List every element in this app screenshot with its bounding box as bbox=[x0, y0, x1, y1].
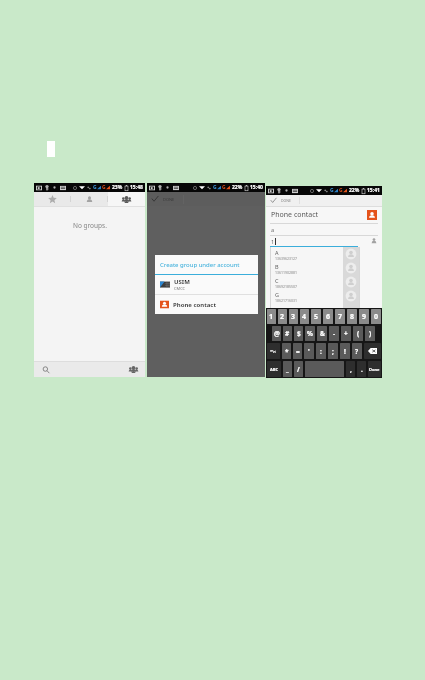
button[interactable]: = bbox=[293, 343, 302, 359]
staticText: 22% bbox=[349, 187, 360, 194]
staticText: = bbox=[296, 347, 300, 356]
staticText: Phone contact bbox=[271, 210, 319, 220]
button[interactable]: B bbox=[271, 261, 343, 275]
button[interactable]: ' bbox=[304, 343, 314, 359]
staticText: 18621716031 bbox=[275, 298, 298, 303]
button[interactable]: * bbox=[282, 343, 291, 359]
staticText: . bbox=[361, 365, 363, 374]
staticText: 15:41 bbox=[367, 187, 380, 194]
staticText: 13639623127 bbox=[275, 256, 298, 261]
button[interactable]: + bbox=[341, 326, 351, 341]
staticText: G bbox=[213, 184, 217, 191]
staticText: # bbox=[285, 329, 290, 338]
button[interactable]: Tab bbox=[71, 192, 108, 206]
button[interactable]: ? bbox=[352, 343, 362, 359]
staticText: 2 bbox=[280, 312, 285, 322]
button[interactable]: Phone contact bbox=[155, 295, 258, 314]
staticText: ABC bbox=[270, 367, 278, 372]
button[interactable]: Add group bbox=[121, 362, 145, 377]
staticText: 13611902881 bbox=[275, 270, 298, 275]
button[interactable]: @ bbox=[272, 326, 281, 341]
button[interactable]: 9 bbox=[359, 309, 369, 324]
staticText: ' bbox=[308, 347, 310, 356]
button[interactable]: ) bbox=[365, 326, 375, 341]
staticText: * bbox=[285, 347, 289, 356]
button[interactable]: G bbox=[271, 289, 343, 303]
staticText: 8 bbox=[350, 312, 355, 322]
button[interactable]: C bbox=[271, 275, 343, 289]
button[interactable]: 2 bbox=[278, 309, 287, 324]
staticText: G bbox=[339, 187, 343, 194]
staticText: 0 bbox=[374, 312, 379, 322]
staticText: : bbox=[320, 347, 322, 356]
staticText: G bbox=[222, 184, 226, 191]
staticText: 3 bbox=[291, 312, 296, 322]
staticText: 1 bbox=[269, 312, 274, 322]
staticText: 15:48 bbox=[130, 184, 143, 191]
staticText: C bbox=[275, 277, 279, 284]
staticText: , bbox=[350, 365, 352, 374]
staticText: No groups. bbox=[73, 221, 107, 230]
staticText: ( bbox=[357, 329, 360, 338]
staticText: DONE bbox=[281, 198, 291, 203]
staticText: _ bbox=[286, 365, 289, 374]
button[interactable]: ( bbox=[353, 326, 363, 341]
button[interactable]: 6 bbox=[323, 309, 333, 324]
staticText: a bbox=[271, 226, 275, 233]
staticText: $ bbox=[297, 329, 301, 338]
button[interactable]: / bbox=[294, 361, 303, 377]
staticText: 6 bbox=[326, 312, 331, 322]
staticText: G bbox=[275, 291, 280, 298]
staticText: & bbox=[320, 329, 325, 338]
button[interactable]: USIM bbox=[155, 275, 258, 294]
staticText: G bbox=[93, 184, 97, 191]
button[interactable]: Account bbox=[367, 210, 377, 220]
button[interactable]: . bbox=[357, 361, 366, 377]
staticText: A bbox=[275, 249, 279, 256]
button[interactable]: A bbox=[271, 247, 343, 261]
staticText: Done bbox=[369, 367, 380, 372]
button[interactable]: % bbox=[305, 326, 315, 341]
staticText: @ bbox=[274, 329, 280, 338]
staticText: G bbox=[102, 184, 106, 191]
button[interactable]: , bbox=[346, 361, 355, 377]
button[interactable]: 5 bbox=[311, 309, 321, 324]
button[interactable]: $ bbox=[294, 326, 303, 341]
button[interactable]: Delete bbox=[364, 343, 381, 359]
button[interactable]: 4 bbox=[300, 309, 309, 324]
button[interactable]: # bbox=[283, 326, 292, 341]
button[interactable]: 8 bbox=[347, 309, 357, 324]
staticText: / bbox=[297, 365, 300, 374]
staticText: Phone contact bbox=[173, 301, 217, 309]
button[interactable]: _ bbox=[283, 361, 292, 377]
staticText: 1 bbox=[271, 238, 275, 245]
button[interactable]: : bbox=[316, 343, 326, 359]
staticText: *\< bbox=[270, 349, 277, 354]
button[interactable]: *\< bbox=[267, 343, 280, 359]
staticText: - bbox=[333, 329, 336, 338]
button[interactable]: Tab bbox=[34, 192, 71, 206]
button[interactable]: ABC bbox=[267, 361, 281, 377]
staticText: 22% bbox=[232, 184, 243, 191]
staticText: 23% bbox=[112, 184, 123, 191]
button[interactable]: 0 bbox=[371, 309, 381, 324]
staticText: G bbox=[330, 187, 334, 194]
staticText: + bbox=[344, 329, 348, 338]
staticText: B bbox=[275, 263, 279, 270]
button[interactable]: ! bbox=[340, 343, 350, 359]
staticText: ; bbox=[332, 347, 334, 356]
staticText: ! bbox=[344, 347, 346, 356]
button[interactable]: Done bbox=[368, 361, 381, 377]
button[interactable]: 3 bbox=[289, 309, 298, 324]
button[interactable]: 7 bbox=[335, 309, 345, 324]
button[interactable]: & bbox=[317, 326, 327, 341]
staticText: 7 bbox=[338, 312, 343, 322]
button[interactable]: ; bbox=[328, 343, 338, 359]
button[interactable]: 1 bbox=[267, 309, 276, 324]
button[interactable]: - bbox=[329, 326, 339, 341]
button[interactable]: Tab bbox=[108, 192, 145, 206]
staticText: 5 bbox=[314, 312, 319, 322]
button[interactable]: Search bbox=[34, 362, 58, 377]
staticText: ? bbox=[355, 347, 359, 356]
